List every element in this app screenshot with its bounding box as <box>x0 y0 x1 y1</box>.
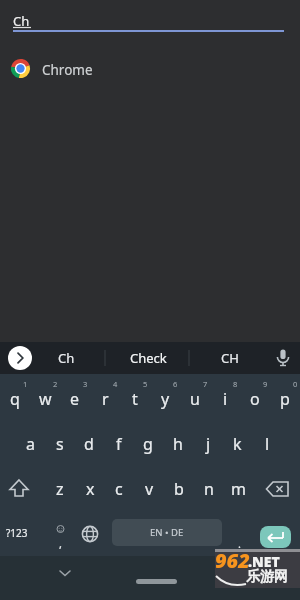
staticText: Check <box>130 349 167 367</box>
button[interactable] <box>263 477 293 501</box>
button[interactable]: k <box>222 421 252 466</box>
staticText: Chrome <box>42 61 93 79</box>
button[interactable]: e <box>60 376 90 421</box>
button[interactable]: CH <box>185 345 275 371</box>
button[interactable] <box>79 523 101 545</box>
staticText: p <box>280 388 290 410</box>
staticText: e <box>70 388 80 410</box>
button[interactable] <box>8 346 32 370</box>
button[interactable] <box>45 511 75 556</box>
staticText: Ch <box>58 349 75 367</box>
staticText: w <box>39 388 52 410</box>
button[interactable] <box>0 52 300 86</box>
button[interactable]: h <box>163 421 193 466</box>
staticText: 9 <box>263 379 268 389</box>
staticText: g <box>143 433 153 455</box>
button[interactable]: . <box>231 535 247 551</box>
staticText: 0 <box>293 379 298 389</box>
button[interactable]: z <box>45 466 75 511</box>
staticText: j <box>206 433 211 455</box>
button[interactable]: v <box>134 466 164 511</box>
button[interactable]: c <box>104 466 134 511</box>
staticText: i <box>223 388 228 410</box>
button[interactable]: n <box>194 466 224 511</box>
staticText: 3 <box>83 379 88 389</box>
staticText: x <box>86 478 95 500</box>
staticText: v <box>145 478 154 500</box>
staticText: z <box>56 478 64 500</box>
staticText: s <box>56 433 64 455</box>
button[interactable]: q <box>0 376 30 421</box>
staticText: , <box>59 536 62 550</box>
button[interactable]: u <box>180 376 210 421</box>
staticText: 962 <box>215 547 250 574</box>
button[interactable]: x <box>75 466 105 511</box>
staticText: u <box>190 388 200 410</box>
staticText: 6 <box>173 379 178 389</box>
button[interactable]: Ch <box>21 345 111 371</box>
staticText: ?123 <box>6 526 28 540</box>
button[interactable] <box>6 6 294 34</box>
button[interactable]: p <box>270 376 300 421</box>
staticText: . <box>238 536 241 551</box>
staticText: d <box>84 433 94 455</box>
staticText: .NET <box>248 552 280 571</box>
button[interactable]: ?123 <box>0 523 37 543</box>
staticText: 4 <box>113 379 118 389</box>
staticText: r <box>102 388 109 410</box>
button[interactable]: o <box>240 376 270 421</box>
button[interactable]: i <box>210 376 240 421</box>
staticText: y <box>161 388 170 410</box>
button[interactable]: r <box>90 376 120 421</box>
button[interactable] <box>54 564 76 582</box>
staticText: q <box>10 388 20 410</box>
staticText: 8 <box>233 379 238 389</box>
button[interactable]: b <box>164 466 194 511</box>
staticText: EN • DE <box>150 526 184 539</box>
button[interactable]: m <box>223 466 253 511</box>
button[interactable]: f <box>104 421 134 466</box>
button[interactable]: g <box>133 421 163 466</box>
button[interactable]: s <box>45 421 75 466</box>
button[interactable] <box>136 579 177 584</box>
button[interactable]: t <box>120 376 150 421</box>
staticText: o <box>250 388 260 410</box>
button[interactable]: a <box>15 421 45 466</box>
staticText: Ch <box>13 12 30 30</box>
staticText: 5 <box>143 379 148 389</box>
staticText: 1 <box>23 379 28 389</box>
button[interactable]: w <box>30 376 60 421</box>
button[interactable] <box>4 474 34 504</box>
staticText: l <box>265 433 270 455</box>
staticText: n <box>204 478 214 500</box>
button[interactable] <box>274 348 292 368</box>
button[interactable]: j <box>193 421 223 466</box>
staticText: m <box>231 478 246 500</box>
staticText: 7 <box>203 379 208 389</box>
button[interactable]: Check <box>103 345 193 371</box>
staticText: 2 <box>53 379 58 389</box>
button[interactable]: EN • DE <box>112 519 222 546</box>
staticText: 乐游网 <box>246 568 288 586</box>
button[interactable]: d <box>74 421 104 466</box>
staticText: f <box>116 433 122 455</box>
staticText: CH <box>221 349 239 367</box>
button[interactable]: y <box>150 376 180 421</box>
button[interactable] <box>260 526 291 548</box>
button[interactable]: l <box>252 421 282 466</box>
staticText: h <box>173 433 183 455</box>
staticText: a <box>26 433 35 455</box>
staticText: b <box>174 478 184 500</box>
staticText: c <box>115 478 123 500</box>
staticText: k <box>233 433 242 455</box>
staticText: t <box>132 388 138 410</box>
